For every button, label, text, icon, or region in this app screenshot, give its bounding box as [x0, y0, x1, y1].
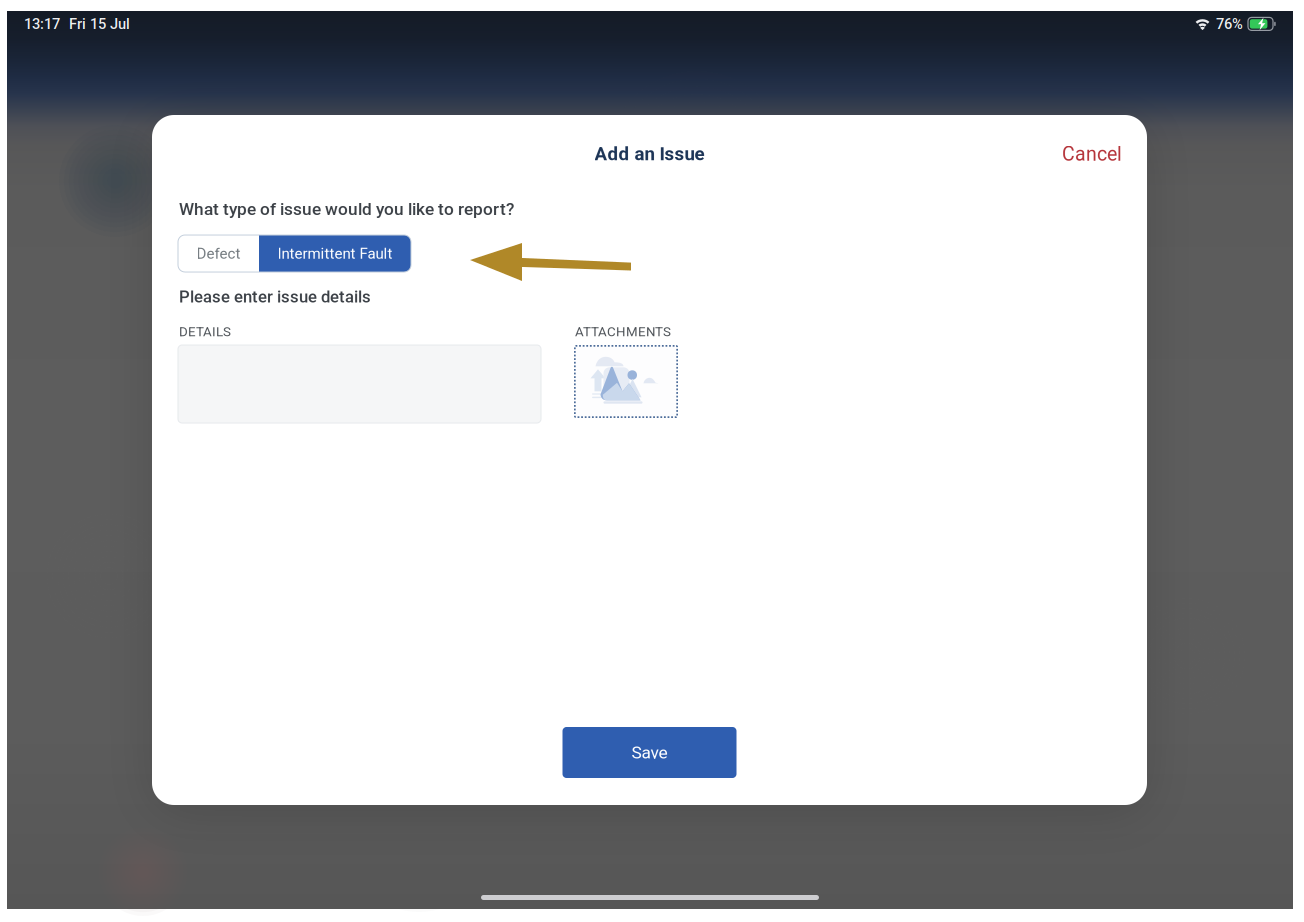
button[interactable]: Cancel: [1048, 134, 1136, 174]
staticText: Add an Issue: [594, 143, 704, 165]
button[interactable]: Add attachment: [574, 345, 678, 418]
staticText: Fri 15 Jul: [69, 15, 130, 33]
button[interactable]: Defect: [178, 235, 259, 272]
staticText: Please enter issue details: [179, 287, 371, 306]
staticText: ATTACHMENTS: [575, 324, 671, 340]
staticText: DETAILS: [179, 324, 231, 340]
staticText: 13:17: [24, 15, 60, 33]
staticText: 76%: [1216, 15, 1243, 33]
button[interactable]: Intermittent Fault: [259, 235, 411, 272]
staticText: Cancel: [1062, 143, 1122, 165]
button[interactable]: Save: [562, 727, 736, 778]
staticText: Intermittent Fault: [277, 245, 392, 262]
staticText: Defect: [196, 245, 240, 262]
staticText: What type of issue would you like to rep…: [179, 199, 514, 219]
staticText: Save: [631, 742, 667, 763]
